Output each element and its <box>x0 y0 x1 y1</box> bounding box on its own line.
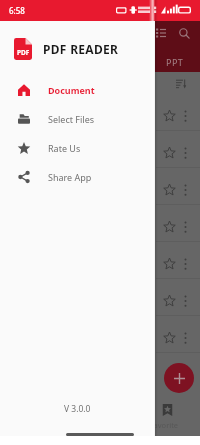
button[interactable]: Document <box>0 75 155 104</box>
button[interactable]: View mode <box>152 24 170 42</box>
button[interactable] <box>0 94 200 131</box>
button[interactable]: Search <box>175 24 193 42</box>
staticText: V 3.0.0 <box>64 403 91 415</box>
button[interactable] <box>0 242 200 279</box>
staticText: PDF READER <box>43 41 119 57</box>
button[interactable]: Rate Us <box>0 133 155 162</box>
button[interactable] <box>0 131 200 168</box>
button[interactable]: Select Files <box>0 104 155 133</box>
staticText: PDF <box>17 48 30 57</box>
button[interactable]: Add <box>164 363 194 393</box>
staticText: favorite <box>151 420 179 430</box>
staticText: Document <box>48 84 95 96</box>
button[interactable] <box>0 168 200 205</box>
staticText: Select Files <box>48 113 95 125</box>
button[interactable] <box>0 279 200 316</box>
staticText: PPT <box>166 56 184 68</box>
button[interactable]: Share App <box>0 162 155 191</box>
button[interactable] <box>0 205 200 242</box>
staticText: Rate Us <box>48 142 81 154</box>
staticText: 6:58 <box>9 5 25 16</box>
staticText: Share App <box>48 171 92 183</box>
button[interactable]: Sort <box>174 77 187 90</box>
button[interactable]: favorite <box>147 400 187 435</box>
button[interactable] <box>0 316 200 353</box>
